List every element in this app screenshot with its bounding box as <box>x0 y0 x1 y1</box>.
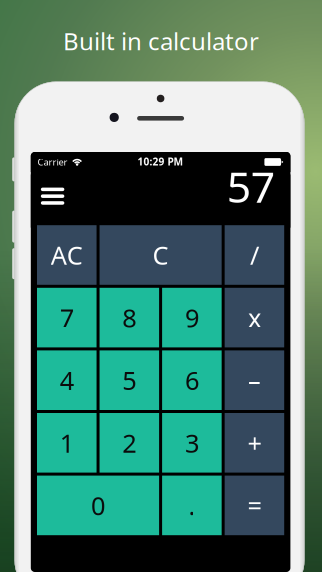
button[interactable]: 6 <box>162 350 222 410</box>
button[interactable]: 2 <box>100 413 159 473</box>
staticText: 3 <box>185 425 199 460</box>
staticText: C <box>153 238 169 272</box>
staticText: AC <box>51 238 83 272</box>
button[interactable]: x <box>225 288 284 347</box>
staticText: 8 <box>122 300 136 335</box>
staticText: 57 <box>227 157 275 215</box>
staticText: = <box>247 488 261 523</box>
button[interactable]: Menu <box>36 181 70 211</box>
staticText: + <box>247 425 261 460</box>
button[interactable]: – <box>225 350 284 410</box>
button[interactable]: 4 <box>37 350 97 410</box>
staticText: 5 <box>122 363 136 397</box>
button[interactable]: 9 <box>162 288 222 347</box>
button[interactable]: 8 <box>100 288 159 347</box>
button[interactable]: / <box>225 225 284 285</box>
staticText: Built in calculator <box>63 25 259 57</box>
staticText: 1 <box>60 425 74 460</box>
staticText: 10:29 PM <box>138 155 184 168</box>
button[interactable]: 3 <box>162 413 222 473</box>
button[interactable]: 1 <box>37 413 97 473</box>
staticText: 7 <box>60 300 74 335</box>
button[interactable]: 5 <box>100 350 159 410</box>
button[interactable]: = <box>225 476 284 535</box>
staticText: Carrier <box>38 156 68 168</box>
button[interactable]: C <box>100 225 222 285</box>
staticText: 2 <box>122 425 136 460</box>
staticText: – <box>248 363 261 397</box>
staticText: . <box>188 488 195 523</box>
button[interactable]: + <box>225 413 284 473</box>
button[interactable]: AC <box>37 225 97 285</box>
staticText: x <box>248 300 261 335</box>
staticText: 9 <box>185 300 199 335</box>
staticText: 0 <box>91 488 105 523</box>
button[interactable]: 7 <box>37 288 97 347</box>
staticText: / <box>250 238 259 272</box>
button[interactable]: 0 <box>37 476 159 535</box>
button[interactable]: . <box>162 476 222 535</box>
staticText: 6 <box>185 363 199 397</box>
staticText: 4 <box>60 363 74 397</box>
